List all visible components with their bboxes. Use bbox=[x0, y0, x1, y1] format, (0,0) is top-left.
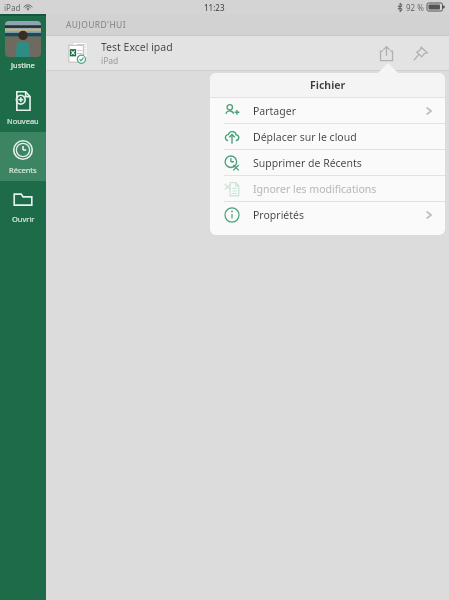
staticText: AUJOURD'HUI bbox=[66, 19, 127, 31]
button[interactable]: Nouveau bbox=[0, 83, 46, 132]
staticText: Propriétés bbox=[253, 208, 304, 222]
button[interactable]: Partager bbox=[210, 98, 445, 123]
staticText: Test Excel ipad bbox=[101, 40, 173, 54]
staticText: Ouvrir bbox=[12, 214, 35, 224]
button[interactable]: Ignorer les modifications bbox=[210, 176, 445, 201]
button[interactable]: Partager bbox=[371, 38, 401, 68]
staticText: Récents bbox=[9, 165, 37, 175]
button[interactable]: Épingler bbox=[405, 38, 435, 68]
staticText: iPad bbox=[4, 2, 21, 13]
button[interactable]: Test Excel ipad bbox=[46, 36, 449, 70]
button[interactable]: Supprimer de Récents bbox=[210, 150, 445, 175]
button[interactable]: Propriétés bbox=[210, 202, 445, 227]
staticText: Justine bbox=[11, 60, 35, 70]
staticText: Partager bbox=[253, 104, 296, 118]
staticText: Supprimer de Récents bbox=[253, 156, 362, 170]
button[interactable]: Ouvrir bbox=[0, 181, 46, 230]
button[interactable]: Déplacer sur le cloud bbox=[210, 124, 445, 149]
staticText: iPad bbox=[101, 55, 119, 67]
staticText: 92 % bbox=[406, 2, 424, 13]
staticText: Déplacer sur le cloud bbox=[253, 130, 357, 144]
staticText: Nouveau bbox=[7, 116, 39, 126]
staticText: Fichier bbox=[310, 78, 346, 92]
button[interactable]: Récents bbox=[0, 132, 46, 181]
staticText: 11:23 bbox=[204, 2, 225, 13]
button[interactable]: Justine bbox=[0, 18, 46, 73]
staticText: Ignorer les modifications bbox=[253, 182, 377, 196]
